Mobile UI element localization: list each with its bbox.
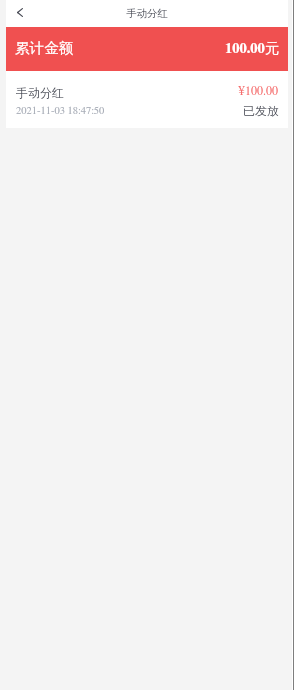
- staticText: 手动分红: [16, 85, 64, 100]
- staticText: 100.00元: [225, 39, 280, 57]
- button[interactable]: 手动分红: [6, 71, 288, 128]
- staticText: 已发放: [243, 103, 279, 118]
- button[interactable]: Back: [6, 0, 34, 27]
- staticText: 手动分红: [126, 7, 168, 20]
- staticText: 累计金额: [15, 39, 74, 57]
- staticText: ¥100.00: [238, 85, 279, 97]
- button[interactable]: 累计金额: [6, 27, 288, 71]
- staticText: 2021-11-03 18:47:50: [16, 106, 105, 117]
